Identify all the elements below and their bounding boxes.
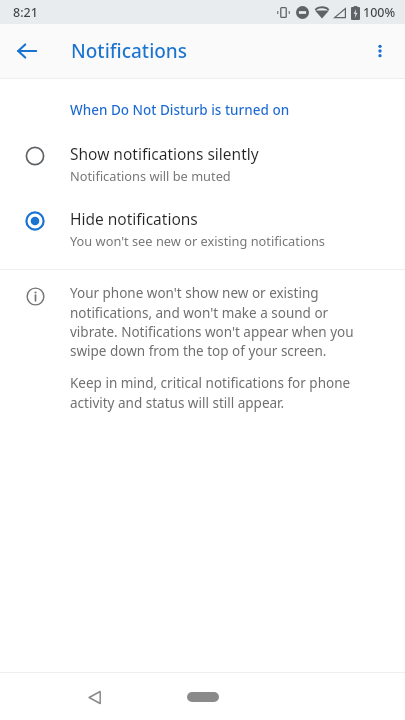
staticText: Notifications [71,38,188,64]
button[interactable]: Home [173,677,233,717]
staticText: 8:21 [13,4,38,21]
staticText: Keep in mind, critical notifications for… [70,374,377,412]
button[interactable]: Back [72,675,116,719]
staticText: 100% [363,4,396,21]
staticText: Hide notifications [70,208,198,229]
staticText: Show notifications silently [70,143,259,164]
button[interactable]: Show notifications silently [0,139,405,188]
button[interactable]: Hide notifications [0,204,405,253]
staticText: Your phone won't show new or existing no… [70,284,377,360]
button[interactable]: Back [6,30,48,72]
staticText: Notifications will be muted [70,167,231,184]
staticText: You won't see new or existing notificati… [70,232,325,249]
button[interactable]: More options [360,31,400,71]
staticText: When Do Not Disturb is turned on [70,101,290,119]
